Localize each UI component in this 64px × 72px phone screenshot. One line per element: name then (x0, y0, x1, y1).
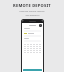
button[interactable]: Profile (39, 24, 42, 27)
button[interactable]: Submit deposit (23, 69, 42, 71)
button[interactable] (24, 33, 41, 37)
button[interactable] (24, 38, 41, 42)
staticText: Improve remote capture (19, 10, 45, 13)
button[interactable] (24, 28, 41, 32)
staticText: REMOTE DEPOSIT (13, 3, 51, 8)
staticText: and efficiency (25, 14, 40, 17)
